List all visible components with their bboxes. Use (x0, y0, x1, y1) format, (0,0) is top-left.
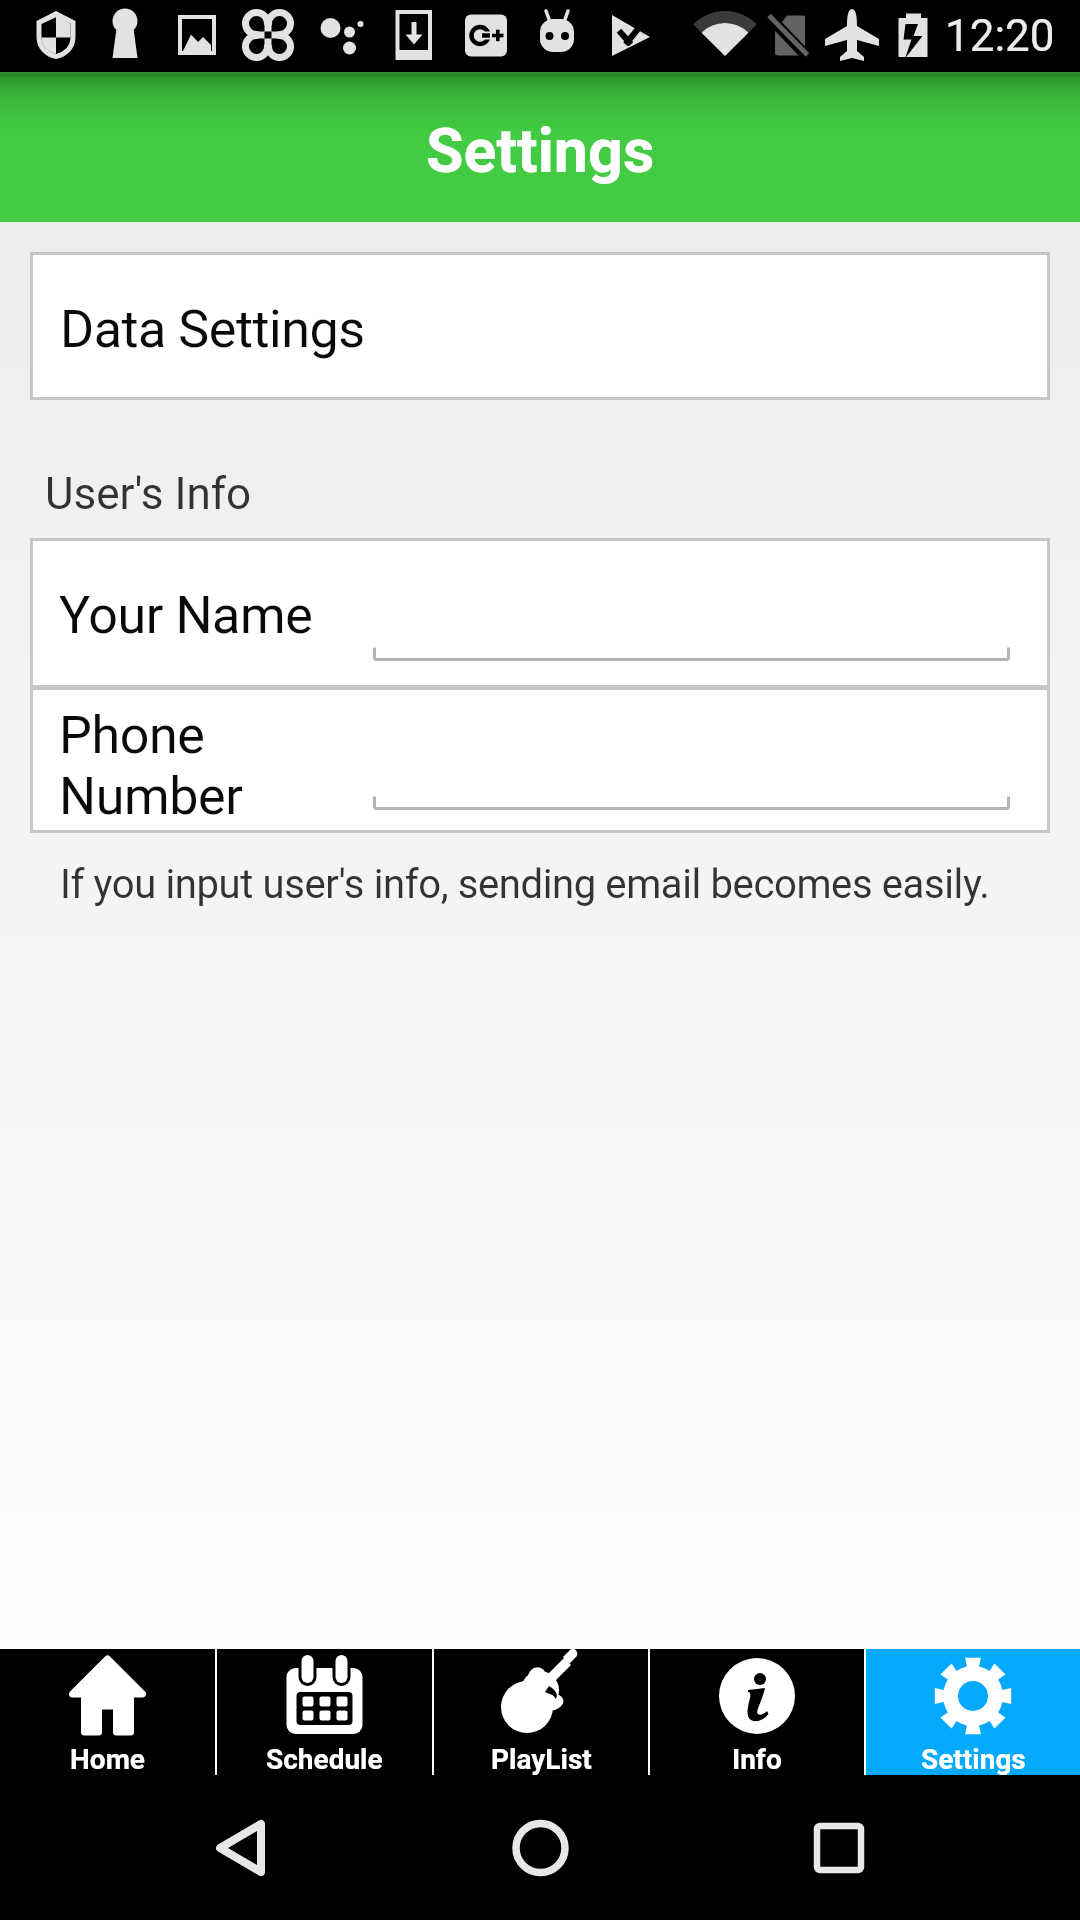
staticText: Your Name (59, 585, 313, 646)
button[interactable]: Info (650, 1649, 864, 1775)
button[interactable]: Home (0, 1649, 215, 1775)
staticText: PlayList (491, 1743, 592, 1776)
button[interactable]: Home (360, 1775, 720, 1920)
staticText: Settings (426, 115, 655, 186)
staticText: Settings (921, 1743, 1026, 1776)
button[interactable]: Your Name (33, 541, 1047, 685)
button[interactable]: Settings (866, 1649, 1080, 1775)
button[interactable]: Data Settings (33, 255, 1047, 397)
staticText: Schedule (266, 1743, 383, 1776)
staticText: Info (732, 1743, 782, 1776)
button[interactable]: Phone Number (33, 690, 1047, 830)
staticText: User's Info (45, 468, 252, 520)
staticText: Home (70, 1743, 146, 1776)
button[interactable]: Recents (720, 1775, 1080, 1920)
staticText: If you input user's info, sending email … (60, 861, 990, 908)
button[interactable]: Back (0, 1775, 360, 1920)
staticText: Data Settings (60, 299, 365, 360)
staticText: Phone Number (59, 705, 243, 826)
staticText: 12:20 (945, 10, 1055, 62)
button[interactable]: PlayList (434, 1649, 648, 1775)
button[interactable]: Schedule (217, 1649, 432, 1775)
